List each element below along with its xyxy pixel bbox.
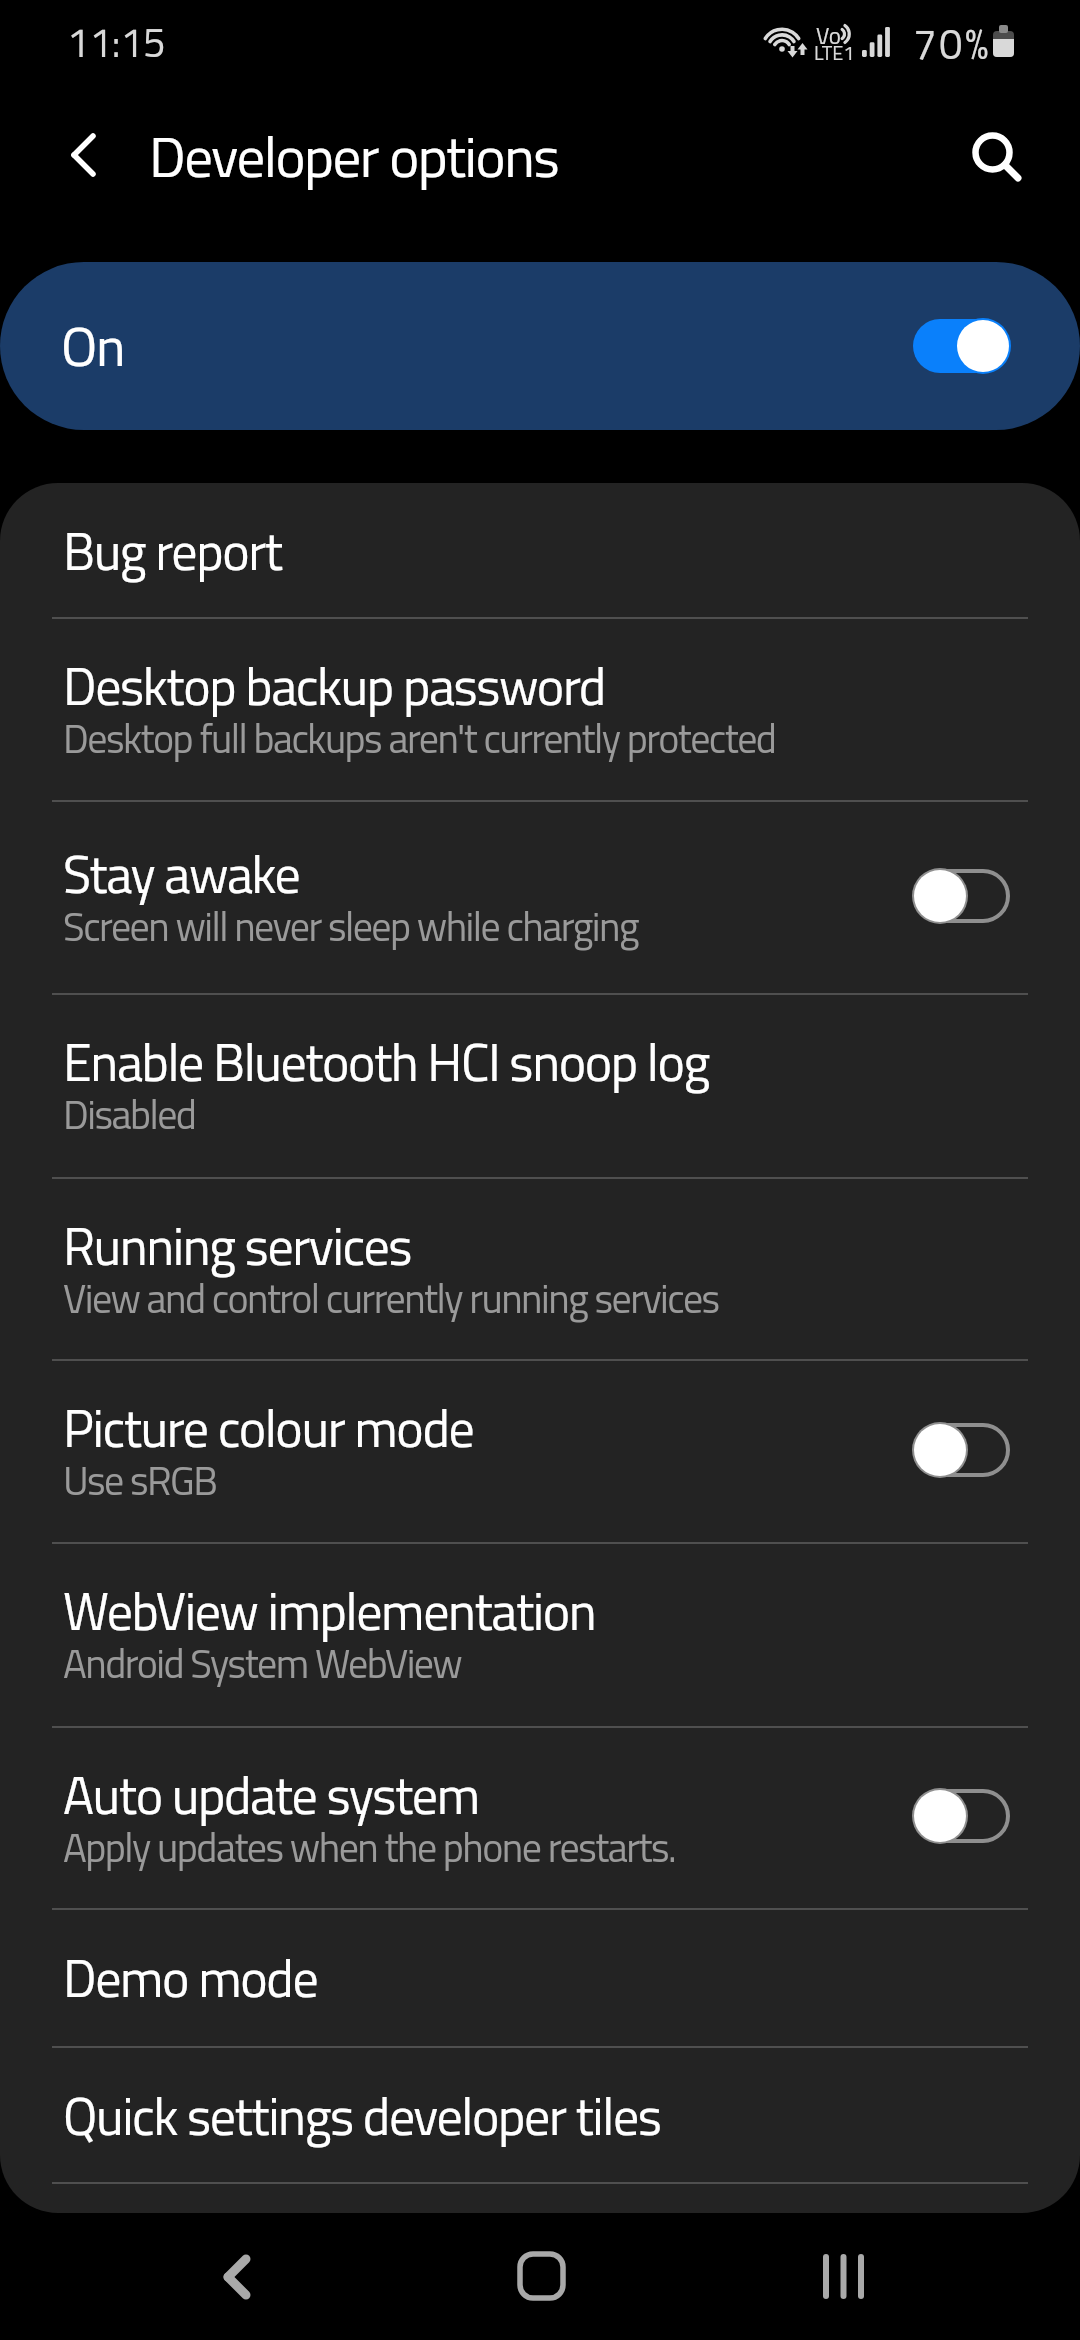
button[interactable]: Back — [199, 2237, 279, 2317]
staticText: Running services — [63, 1206, 412, 1285]
button[interactable]: WebView implementation — [0, 1544, 1080, 1726]
staticText: Enable Bluetooth HCI snoop log — [63, 1022, 709, 1101]
button[interactable]: Recent apps — [803, 2237, 883, 2317]
staticText: WebView implementation — [63, 1571, 596, 1650]
staticText: Quick settings developer tiles — [63, 2076, 661, 2155]
button[interactable]: Stay awake — [0, 802, 1080, 993]
staticText: Screen will never sleep while charging — [63, 896, 638, 957]
staticText: 70% — [913, 11, 992, 75]
staticText: Auto update system — [63, 1755, 479, 1834]
button[interactable]: On — [0, 262, 1080, 430]
staticText: Desktop backup password — [63, 646, 605, 725]
staticText: Vo — [816, 18, 841, 53]
button[interactable]: Auto update system — [0, 1728, 1080, 1908]
button[interactable]: Home — [500, 2237, 580, 2317]
staticText: View and control currently running servi… — [63, 1268, 719, 1329]
button[interactable]: Desktop backup password — [0, 619, 1080, 800]
button[interactable]: Quick settings developer tiles — [0, 2048, 1080, 2182]
staticText: Android System WebView — [63, 1633, 462, 1694]
button[interactable]: Auto update system switch — [913, 1786, 1014, 1846]
staticText: Disabled — [63, 1084, 196, 1145]
button[interactable]: Stay awake switch — [913, 866, 1014, 926]
staticText: Use sRGB — [63, 1450, 217, 1511]
button[interactable]: Picture colour mode — [0, 1361, 1080, 1542]
button[interactable]: Search — [950, 112, 1038, 200]
staticText: LTE1 — [814, 37, 855, 67]
button[interactable]: Running services — [0, 1179, 1080, 1359]
staticText: On — [61, 304, 125, 388]
button[interactable]: Picture colour mode switch — [913, 1420, 1014, 1480]
staticText: Stay awake — [63, 834, 300, 913]
staticText: Demo mode — [63, 1938, 318, 2017]
button[interactable]: Bug report — [0, 483, 1080, 617]
button[interactable]: Demo mode — [0, 1910, 1080, 2046]
staticText: Developer options — [149, 112, 559, 199]
staticText: Desktop full backups aren't currently pr… — [63, 708, 776, 769]
staticText: 11:15 — [67, 12, 166, 73]
staticText: Bug report — [63, 511, 282, 590]
staticText: Picture colour mode — [63, 1388, 474, 1467]
button[interactable]: Navigate up — [40, 112, 128, 200]
button[interactable]: Enable Bluetooth HCI snoop log — [0, 995, 1080, 1177]
staticText: Apply updates when the phone restarts. — [63, 1817, 676, 1878]
